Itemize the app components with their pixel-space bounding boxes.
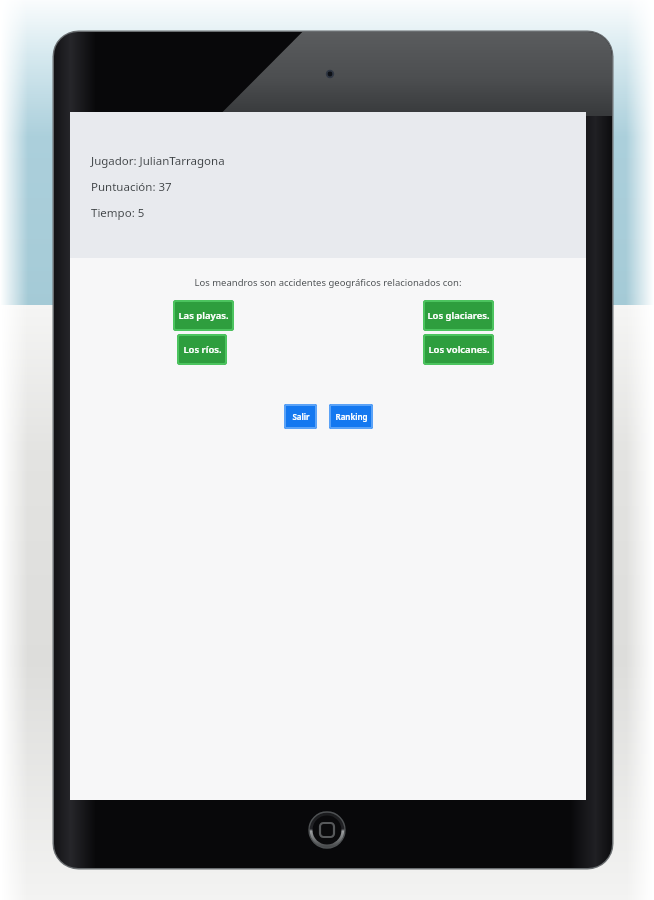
staticText: Tiempo: 5 (91, 205, 145, 221)
staticText: Los meandros son accidentes geográficos … (194, 276, 462, 289)
staticText: Los ríos. (183, 343, 222, 356)
staticText: Puntuación: 37 (91, 179, 172, 195)
staticText: Los volcanes. (428, 343, 490, 356)
button[interactable]: Los ríos. (177, 334, 227, 365)
staticText: Las playas. (178, 309, 229, 322)
button[interactable]: Las playas. (173, 300, 234, 331)
button[interactable]: Los volcanes. (423, 334, 494, 365)
staticText: Jugador: JulianTarragona (91, 153, 225, 169)
button[interactable]: Los glaciares. (423, 300, 494, 331)
staticText: Los glaciares. (427, 309, 490, 322)
button[interactable]: Ranking (329, 404, 373, 429)
staticText: Ranking (335, 411, 368, 422)
staticText: Salir (292, 411, 310, 422)
button[interactable]: Salir (284, 404, 317, 429)
